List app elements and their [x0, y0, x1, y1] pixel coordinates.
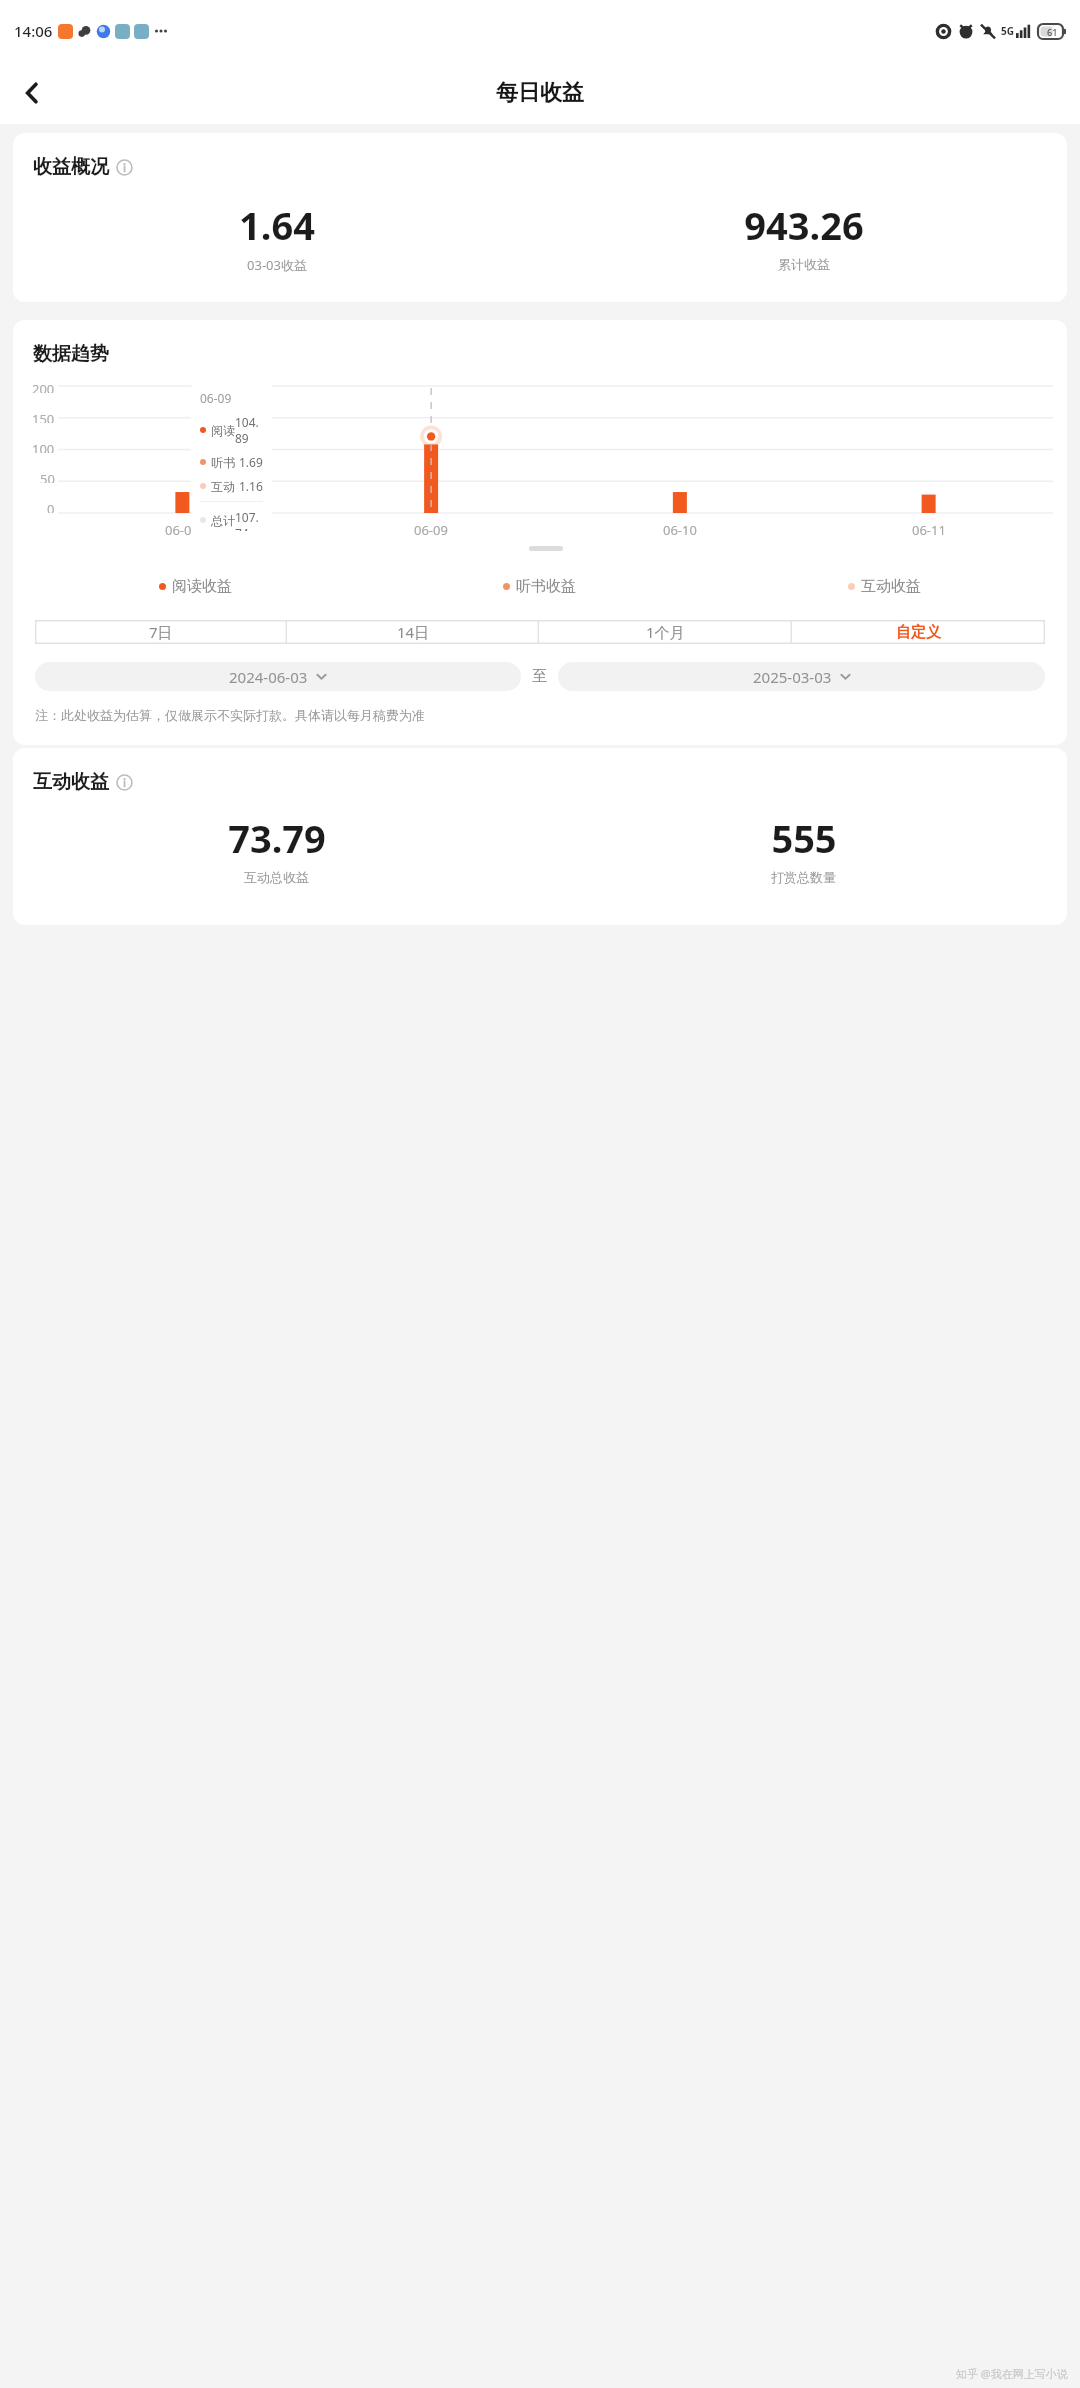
staticText: 03-03收益	[247, 256, 307, 274]
staticText: 互动收益	[861, 577, 921, 596]
staticText: 61	[1047, 26, 1058, 38]
staticText: 1.64	[239, 199, 315, 251]
button[interactable]: 7日	[35, 620, 287, 644]
staticText: 互动	[211, 479, 235, 494]
staticText: 2024-06-03	[229, 667, 308, 687]
staticText: 943.26	[744, 199, 864, 251]
staticText: 50	[40, 470, 55, 483]
staticText: 104.89	[235, 414, 263, 446]
staticText: 06-11	[912, 521, 946, 539]
other: 说明	[116, 774, 133, 791]
staticText: 06-09	[414, 521, 448, 539]
staticText: 0	[47, 500, 55, 513]
staticText: 107.74	[235, 509, 263, 531]
staticText: 06-10	[663, 521, 697, 539]
staticText: 阅读收益	[172, 577, 232, 596]
staticText: 注：此处收益为估算，仅做展示不实际打款。具体请以每月稿费为准	[35, 707, 425, 723]
staticText: 06-09	[200, 390, 232, 406]
staticText: 阅读	[211, 423, 235, 438]
staticText: 数据趋势	[33, 342, 109, 366]
staticText: 知乎 @我在网上写小说	[956, 2366, 1068, 2381]
staticText: 555	[771, 812, 837, 864]
staticText: 100	[32, 440, 55, 453]
staticText: 14日	[397, 622, 430, 642]
button[interactable]: 2024-06-03	[35, 662, 521, 691]
staticText: 自定义	[896, 623, 941, 642]
button[interactable]: 自定义	[792, 620, 1045, 644]
staticText: 1个月	[646, 622, 685, 642]
staticText: 打赏总数量	[771, 869, 836, 885]
staticText: 收益概况	[33, 155, 109, 179]
staticText: 听书	[211, 455, 235, 470]
staticText: 06-08	[165, 521, 199, 539]
staticText: 7日	[149, 622, 173, 642]
other: 说明	[116, 159, 133, 176]
button[interactable]: 2025-03-03	[558, 662, 1045, 691]
staticText: 14:06	[14, 21, 53, 41]
staticText: 73.79	[228, 812, 326, 864]
button[interactable]: 14日	[287, 620, 539, 644]
staticText: 200	[32, 380, 55, 393]
staticText: 互动收益	[33, 770, 109, 794]
staticText: 听书收益	[516, 577, 576, 596]
staticText: 5G	[1001, 24, 1014, 38]
staticText: 1.16	[239, 478, 263, 494]
staticText: 1.69	[239, 454, 263, 470]
staticText: 累计收益	[778, 256, 830, 272]
staticText: 每日收益	[496, 79, 584, 107]
staticText: 2025-03-03	[753, 667, 832, 687]
button[interactable]: 返回	[8, 69, 56, 117]
staticText: 总计	[211, 513, 235, 528]
button[interactable]: 1个月	[539, 620, 792, 644]
staticText: 至	[532, 667, 547, 686]
staticText: 互动总收益	[244, 869, 309, 885]
staticText: 150	[32, 410, 55, 423]
